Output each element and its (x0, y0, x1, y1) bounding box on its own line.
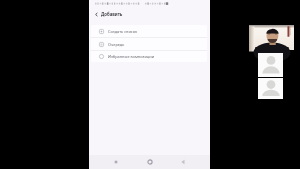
staticText: Добавить (101, 11, 123, 17)
button[interactable]: Создать список (91, 25, 207, 37)
button[interactable]: Избранные композиции (91, 51, 207, 62)
button[interactable]: Recent apps (109, 155, 123, 169)
staticText: Создать список (108, 29, 138, 34)
staticText: Очередь (108, 42, 125, 47)
button[interactable]: Back (92, 10, 100, 18)
staticText: Избранные композиции (108, 54, 155, 59)
button[interactable]: Очередь (91, 38, 207, 50)
button[interactable]: Home (143, 155, 157, 169)
button[interactable]: Back (176, 155, 190, 169)
